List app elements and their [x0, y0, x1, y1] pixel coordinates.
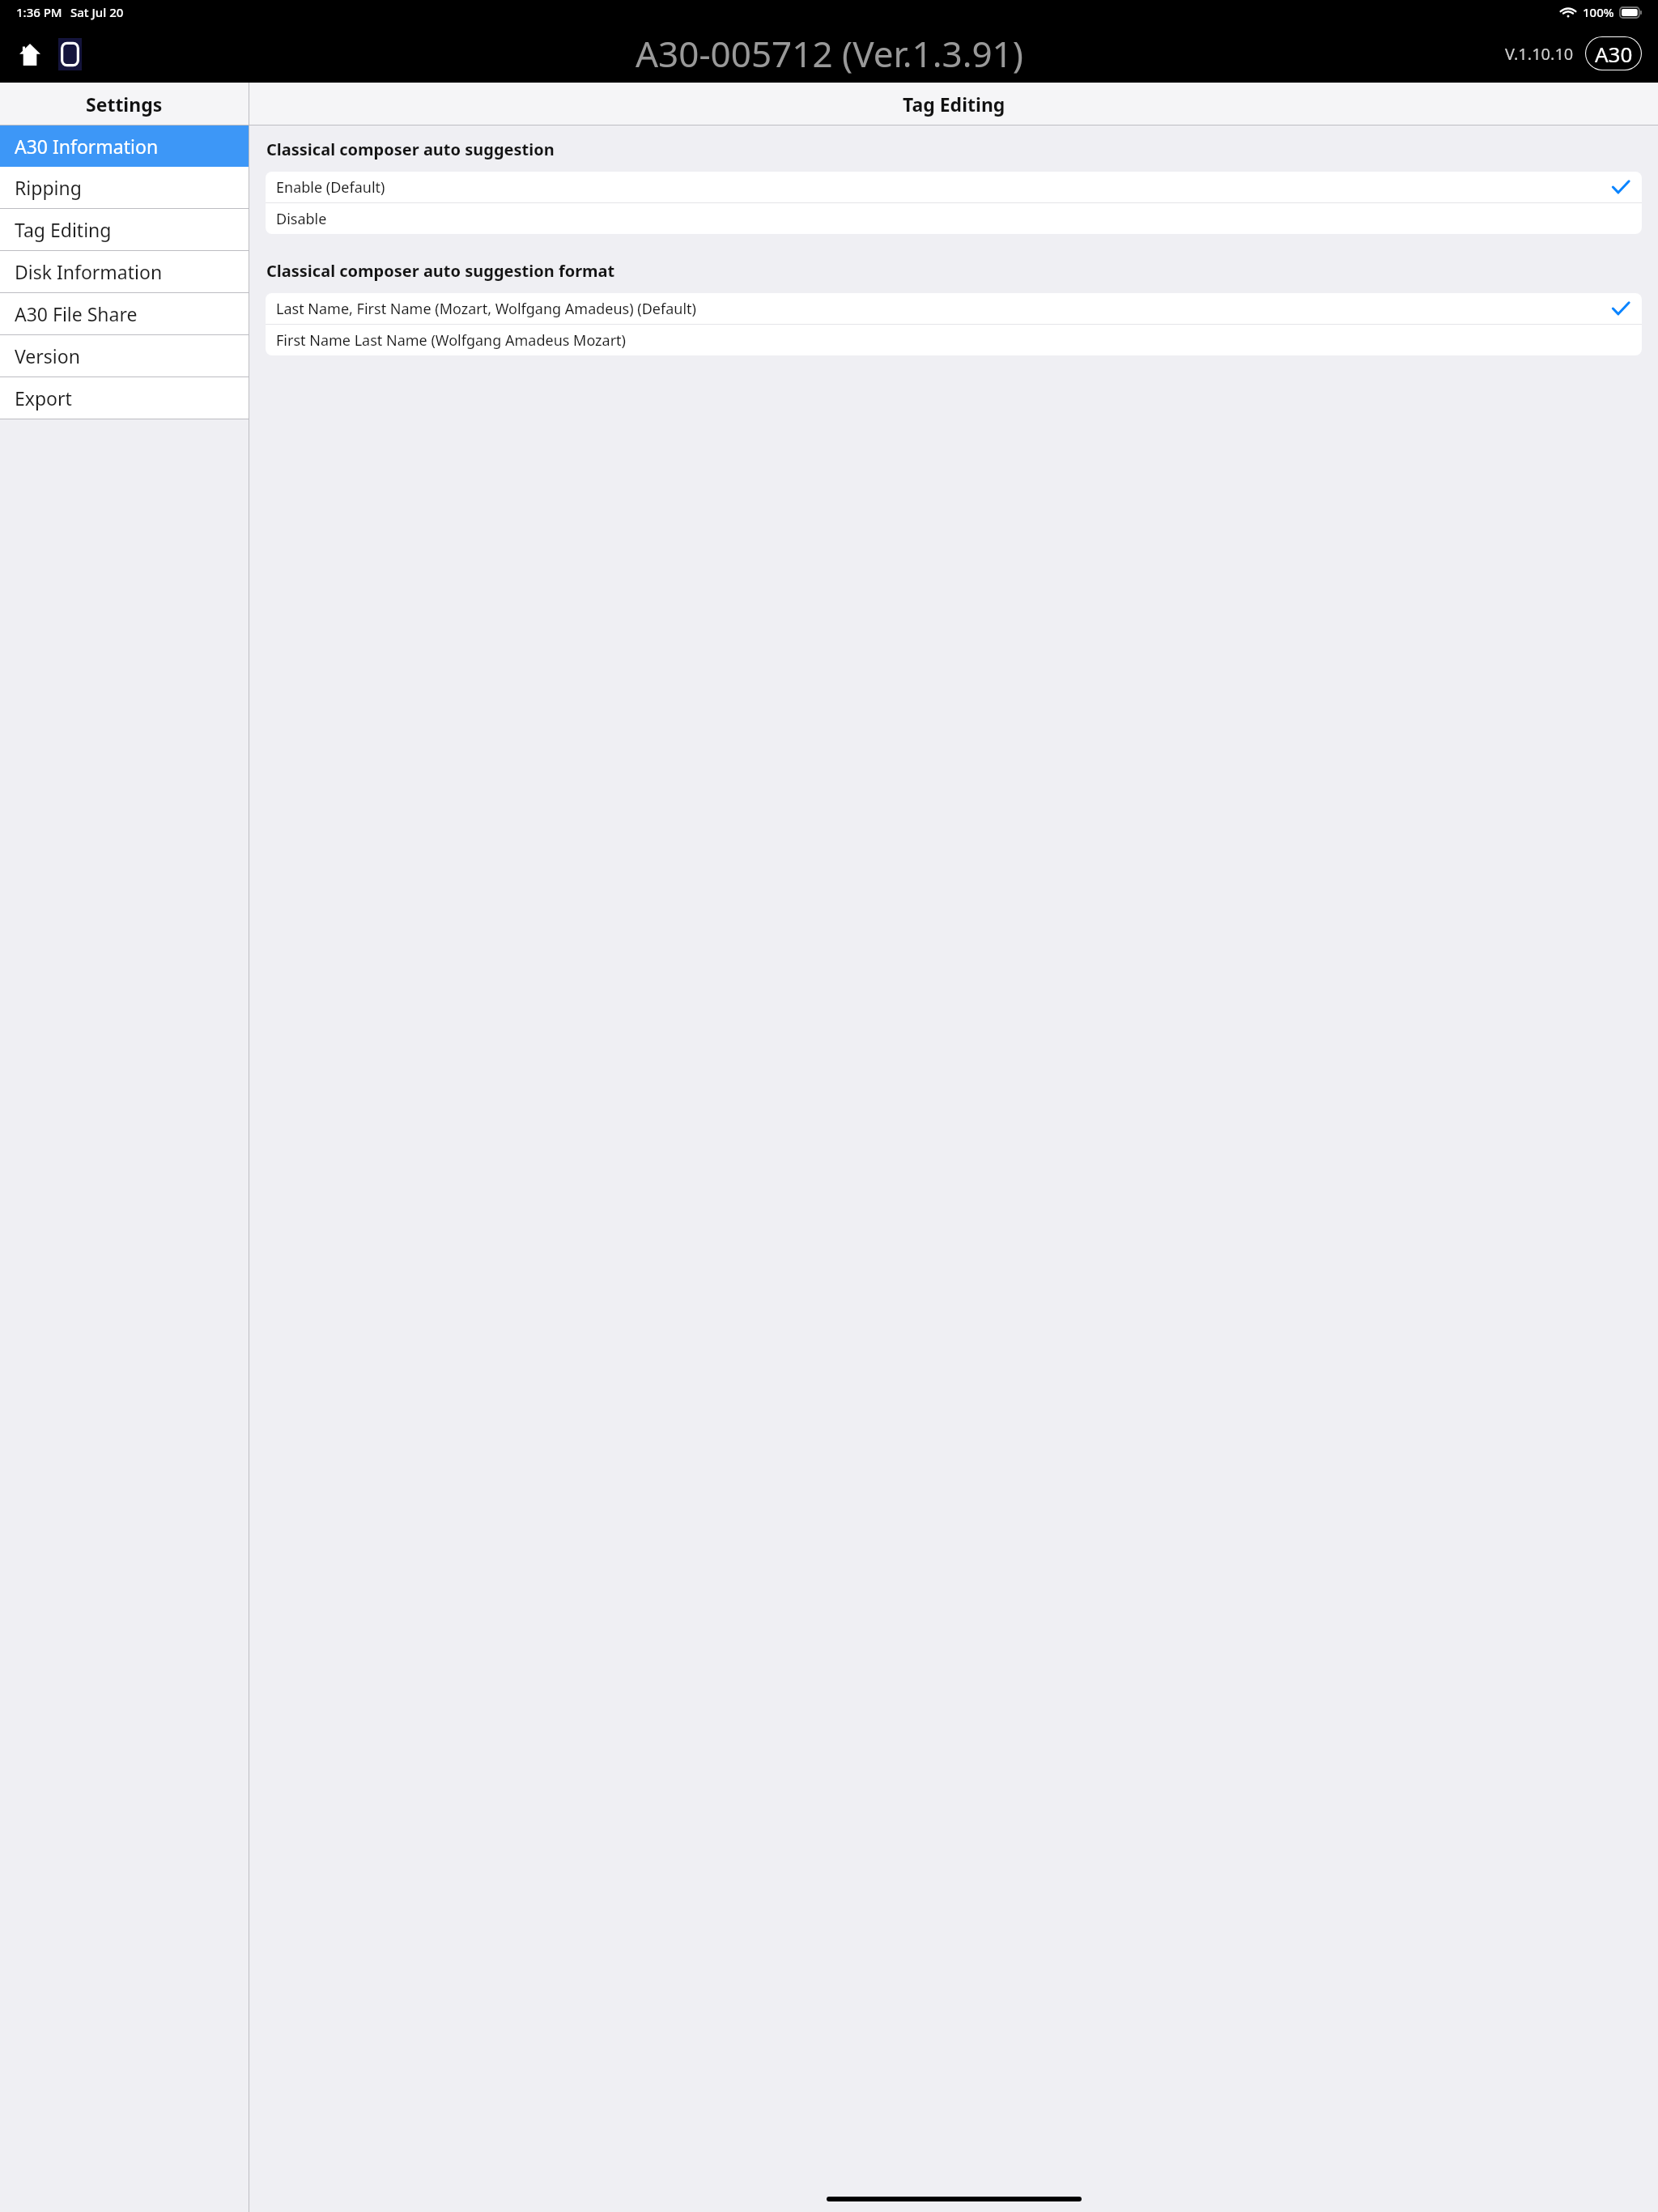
staticText: Last Name, First Name (Mozart, Wolfgang … [276, 299, 696, 319]
staticText: Classical composer auto suggestion [266, 138, 555, 160]
staticText: Disable [276, 209, 327, 229]
button[interactable]: Export [0, 377, 249, 419]
button[interactable]: Disable [266, 203, 1642, 234]
staticText: A30 [1595, 40, 1633, 68]
staticText: Classical composer auto suggestion forma… [266, 260, 615, 282]
staticText: Sat Jul 20 [70, 4, 124, 20]
button[interactable]: First Name Last Name (Wolfgang Amadeus M… [266, 325, 1642, 355]
staticText: 100% [1583, 4, 1614, 20]
staticText: Version [15, 343, 80, 368]
staticText: A30 Information [15, 134, 159, 159]
staticText: 1:36 PM [16, 4, 62, 20]
staticText: Enable (Default) [276, 177, 385, 198]
staticText: A30-005712 (Ver.1.3.91) [636, 29, 1023, 78]
staticText: Export [15, 385, 72, 410]
button[interactable]: App [57, 37, 82, 70]
button[interactable]: Home [18, 42, 42, 66]
button[interactable]: A30 Information [0, 125, 249, 167]
staticText: V.1.10.10 [1505, 43, 1574, 65]
staticText: Settings [86, 91, 163, 117]
staticText: Ripping [15, 175, 82, 200]
staticText: Disk Information [15, 259, 163, 284]
button[interactable]: Last Name, First Name (Mozart, Wolfgang … [266, 293, 1642, 324]
staticText: Tag Editing [15, 217, 112, 242]
button[interactable]: Version [0, 335, 249, 376]
staticText: Tag Editing [903, 91, 1005, 117]
button[interactable]: Disk Information [0, 251, 249, 292]
button[interactable]: A30 File Share [0, 293, 249, 334]
button[interactable]: Ripping [0, 167, 249, 208]
button[interactable]: Enable (Default) [266, 172, 1642, 202]
staticText: First Name Last Name (Wolfgang Amadeus M… [276, 330, 626, 351]
staticText: A30 File Share [15, 301, 138, 326]
button[interactable]: Tag Editing [0, 209, 249, 250]
button[interactable]: A30 [1585, 36, 1642, 70]
